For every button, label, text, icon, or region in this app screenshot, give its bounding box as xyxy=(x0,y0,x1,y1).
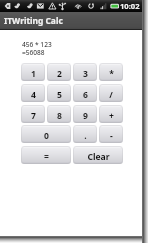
staticText: - xyxy=(110,130,113,142)
button[interactable]: * xyxy=(99,63,123,81)
staticText: 7 xyxy=(31,110,36,122)
staticText: 3 xyxy=(83,68,88,80)
button[interactable]: 7 xyxy=(21,105,45,123)
staticText: * xyxy=(109,68,114,80)
staticText: 1 xyxy=(31,68,36,80)
button[interactable]: 8 xyxy=(47,105,71,123)
staticText: = xyxy=(44,151,49,163)
button[interactable]: . xyxy=(73,125,97,143)
button[interactable]: Clear xyxy=(73,146,123,164)
staticText: ITWriting Calc xyxy=(4,15,63,26)
staticText: 9 xyxy=(83,110,88,122)
button[interactable]: 4 xyxy=(21,84,45,102)
staticText: 2 xyxy=(57,68,62,80)
button[interactable]: + xyxy=(99,105,123,123)
staticText: Clear xyxy=(87,151,110,163)
button[interactable]: 1 xyxy=(21,63,45,81)
staticText: 0 xyxy=(44,130,49,142)
staticText: / xyxy=(109,89,113,101)
button[interactable]: 6 xyxy=(73,84,97,102)
staticText: 456 * 123 xyxy=(22,40,52,49)
staticText: 5 xyxy=(57,89,62,101)
button[interactable]: 5 xyxy=(47,84,71,102)
staticText: 8 xyxy=(57,110,62,122)
staticText: 4 xyxy=(31,89,36,101)
button[interactable]: 0 xyxy=(21,125,71,143)
button[interactable]: 2 xyxy=(47,63,71,81)
staticText: + xyxy=(109,110,114,122)
button[interactable]: 3 xyxy=(73,63,97,81)
staticText: 6 xyxy=(83,89,88,101)
staticText: . xyxy=(84,130,87,142)
staticText: 10:02 xyxy=(120,1,140,11)
button[interactable]: = xyxy=(21,146,71,164)
button[interactable]: / xyxy=(99,84,123,102)
button[interactable]: 9 xyxy=(73,105,97,123)
staticText: =56088 xyxy=(22,48,45,57)
button[interactable]: - xyxy=(99,125,123,143)
